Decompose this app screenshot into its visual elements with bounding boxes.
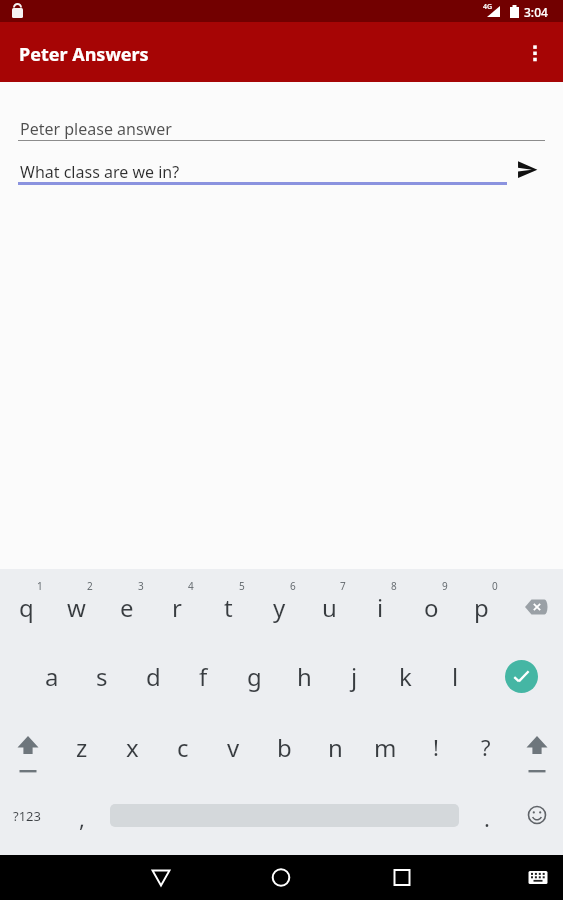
button[interactable]: w — [52, 583, 100, 631]
staticText: g — [247, 660, 262, 693]
staticText: ! — [433, 732, 439, 762]
staticText: What class are we in? — [20, 161, 180, 183]
button[interactable]: ? — [462, 723, 510, 771]
button[interactable]: r — [153, 583, 201, 631]
staticText: w — [67, 591, 86, 624]
staticText: c — [177, 731, 189, 764]
button[interactable]: b — [260, 723, 308, 771]
button[interactable]: a — [28, 652, 76, 700]
staticText: 4G — [483, 2, 493, 12]
staticText: o — [424, 591, 439, 624]
staticText: k — [399, 660, 412, 693]
button[interactable]: s — [78, 652, 126, 700]
button[interactable]: ! — [412, 723, 460, 771]
staticText: x — [126, 731, 139, 764]
staticText: u — [322, 591, 337, 624]
button[interactable] — [516, 855, 560, 899]
staticText: i — [377, 591, 384, 624]
button[interactable]: d — [129, 652, 177, 700]
button[interactable]: g — [230, 652, 278, 700]
staticText: e — [120, 591, 134, 624]
button[interactable]: q — [2, 583, 50, 631]
button[interactable]: y — [255, 583, 303, 631]
staticText: 4 — [188, 579, 194, 593]
staticText: y — [273, 591, 286, 624]
staticText: q — [19, 591, 34, 624]
button[interactable]: p — [457, 583, 505, 631]
button[interactable]: Peter please answer — [0, 107, 563, 143]
staticText: n — [328, 731, 343, 764]
staticText: 3 — [138, 579, 144, 593]
staticText: ?123 — [13, 807, 41, 825]
button[interactable]: v — [209, 723, 257, 771]
staticText: t — [224, 591, 233, 624]
button[interactable]: j — [330, 652, 378, 700]
staticText: s — [96, 660, 108, 693]
staticText: . — [484, 803, 490, 833]
button[interactable]: i — [356, 583, 404, 631]
button[interactable]: f — [179, 652, 227, 700]
button[interactable]: t — [204, 583, 252, 631]
button[interactable] — [517, 34, 553, 70]
button[interactable] — [380, 855, 424, 899]
button[interactable]: , — [58, 794, 106, 842]
button[interactable] — [139, 855, 183, 899]
staticText: m — [374, 731, 397, 764]
staticText: 5 — [239, 579, 245, 593]
button[interactable]: ?123 — [3, 792, 51, 840]
staticText: 2 — [87, 579, 93, 593]
staticText: l — [452, 660, 459, 693]
button[interactable]: u — [305, 583, 353, 631]
button[interactable] — [505, 660, 538, 693]
staticText: z — [76, 731, 88, 764]
button[interactable]: o — [407, 583, 455, 631]
button[interactable]: m — [361, 723, 409, 771]
button[interactable] — [513, 791, 561, 839]
button[interactable]: c — [159, 723, 207, 771]
staticText: ? — [481, 732, 491, 762]
button[interactable]: h — [280, 652, 328, 700]
staticText: 3:04 — [524, 4, 548, 20]
staticText: 6 — [290, 579, 296, 593]
staticText: a — [45, 660, 59, 693]
button[interactable] — [512, 154, 544, 186]
staticText: v — [227, 731, 240, 764]
staticText: , — [79, 803, 85, 833]
staticText: j — [351, 660, 358, 693]
button[interactable]: . — [463, 794, 511, 842]
staticText: p — [474, 591, 489, 624]
staticText: r — [172, 591, 182, 624]
button[interactable]: What class are we in? — [0, 150, 505, 186]
staticText: d — [146, 660, 161, 693]
button[interactable] — [4, 723, 52, 771]
staticText: 0 — [492, 579, 498, 593]
button[interactable]: z — [58, 723, 106, 771]
button[interactable]: k — [381, 652, 429, 700]
staticText: 8 — [391, 579, 397, 593]
staticText: Peter Answers — [19, 42, 149, 67]
staticText: 1 — [37, 579, 43, 593]
button[interactable] — [512, 583, 560, 631]
staticText: Peter please answer — [20, 118, 172, 140]
staticText: 7 — [340, 579, 346, 593]
button[interactable]: x — [108, 723, 156, 771]
staticText: 9 — [442, 579, 448, 593]
button[interactable]: e — [103, 583, 151, 631]
button[interactable]: n — [311, 723, 359, 771]
button[interactable] — [513, 723, 561, 771]
staticText: f — [199, 660, 208, 693]
button[interactable] — [259, 855, 303, 899]
staticText: b — [277, 731, 292, 764]
staticText: h — [297, 660, 312, 693]
button[interactable]: l — [431, 652, 479, 700]
